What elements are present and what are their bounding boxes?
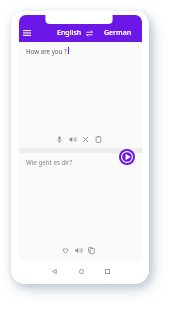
button[interactable]: Menu	[20, 26, 34, 40]
button[interactable]: English	[57, 28, 82, 38]
button[interactable]: Copy	[85, 244, 98, 257]
button[interactable]: Listen	[66, 133, 79, 146]
button[interactable]: Recents	[100, 264, 114, 278]
staticText: How are you ?	[26, 47, 67, 55]
button[interactable]: Swap languages	[83, 27, 95, 39]
button[interactable]: Listen to translation	[72, 244, 85, 257]
staticText: Wie geht es dir?	[26, 158, 73, 166]
button[interactable]: Microphone	[53, 133, 66, 146]
button[interactable]: Home	[74, 264, 88, 278]
button[interactable]: Paste	[92, 133, 105, 146]
button[interactable]: Back	[47, 264, 61, 278]
button[interactable]: Clear	[79, 133, 92, 146]
button[interactable]: Favourite	[59, 244, 72, 257]
button[interactable]: Translate	[119, 149, 135, 165]
button[interactable]: German	[104, 28, 132, 38]
